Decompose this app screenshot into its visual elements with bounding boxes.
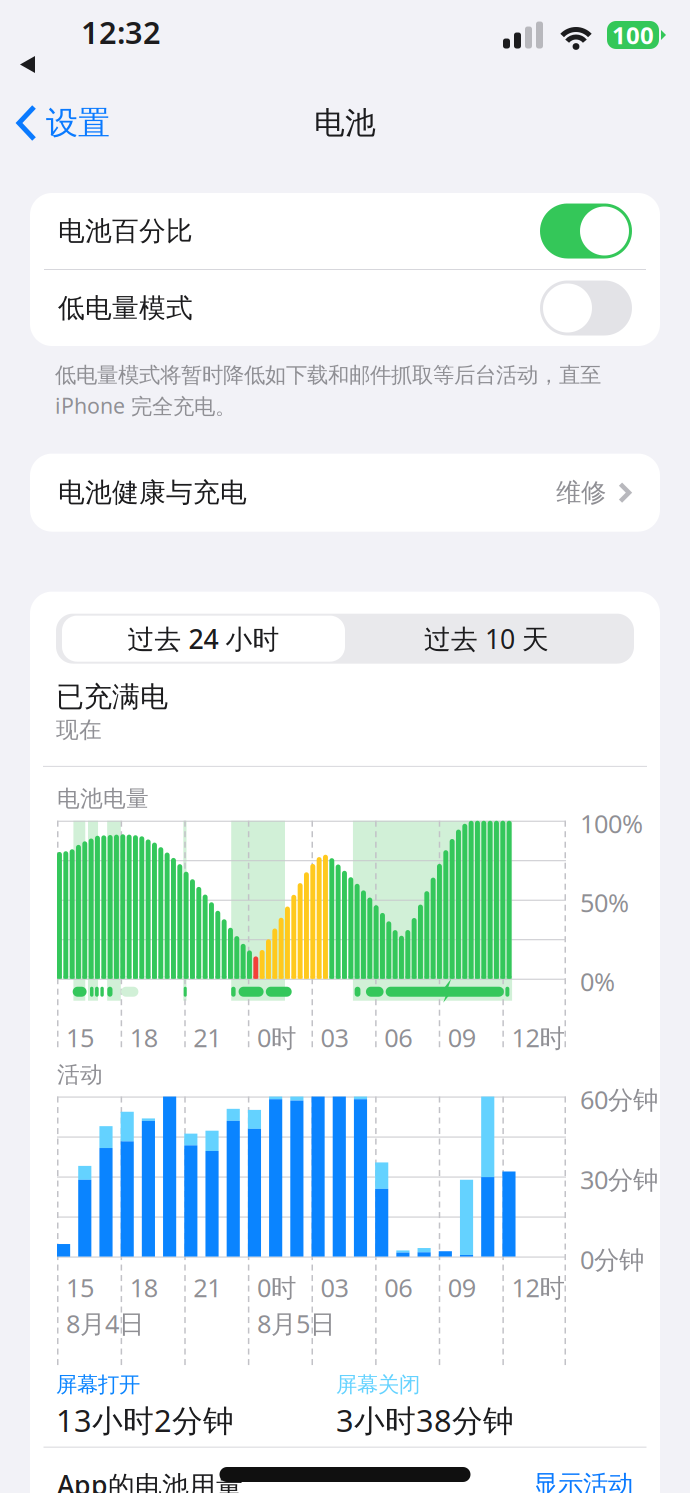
button[interactable]: 电池百分比	[30, 193, 660, 269]
staticText: 100%	[580, 807, 643, 840]
staticText: 8月4日	[66, 1307, 144, 1340]
staticText: 21	[193, 1271, 221, 1304]
staticText: 12:32	[81, 12, 161, 52]
staticText: 21	[193, 1021, 221, 1054]
staticText: 低电量模式	[58, 292, 193, 324]
staticText: 设置	[46, 103, 110, 143]
staticText: 过去 10 天	[424, 621, 549, 656]
staticText: 03	[320, 1021, 348, 1054]
button[interactable]: 低电量模式	[30, 270, 660, 346]
staticText: iPhone 完全充电。	[55, 391, 236, 420]
staticText: 电池	[314, 104, 376, 142]
staticText: 0%	[580, 965, 615, 998]
staticText: 18	[130, 1021, 158, 1054]
staticText: 维修	[556, 477, 606, 508]
button[interactable]: 设置	[0, 93, 120, 153]
staticText: 18	[130, 1271, 158, 1304]
staticText: 低电量模式将暂时降低如下载和邮件抓取等后台活动，直至	[55, 362, 601, 388]
button[interactable]: 电池健康与充电	[30, 454, 660, 532]
staticText: 13小时2分钟	[56, 1400, 234, 1440]
button[interactable]: 过去 10 天	[345, 616, 628, 662]
staticText: 09	[448, 1271, 476, 1304]
staticText: 活动	[57, 1061, 103, 1088]
staticText: 15	[66, 1021, 94, 1054]
staticText: 09	[448, 1021, 476, 1054]
staticText: 现在	[56, 716, 102, 744]
button[interactable]: App的电池用量	[30, 1448, 660, 1493]
staticText: 12时	[511, 1021, 564, 1054]
staticText: 0时	[257, 1271, 296, 1304]
staticText: 0时	[257, 1021, 296, 1054]
staticText: 电池百分比	[58, 215, 193, 247]
staticText: 电池健康与充电	[58, 476, 247, 509]
staticText: 屏幕打开	[56, 1372, 140, 1398]
staticText: 03	[320, 1271, 348, 1304]
staticText: 06	[384, 1021, 412, 1054]
button[interactable]: 过去 24 小时	[62, 616, 345, 662]
staticText: 0分钟	[580, 1243, 644, 1276]
staticText: 电池电量	[57, 785, 149, 813]
staticText: App的电池用量	[57, 1467, 243, 1493]
staticText: 15	[66, 1271, 94, 1304]
staticText: 50%	[580, 886, 629, 919]
staticText: 12时	[511, 1271, 564, 1304]
staticText: 屏幕关闭	[336, 1372, 420, 1398]
staticText: 显示活动	[533, 1469, 633, 1493]
staticText: 100	[612, 19, 654, 51]
staticText: 已充满电	[56, 680, 168, 714]
staticText: 06	[384, 1271, 412, 1304]
staticText: 60分钟	[580, 1083, 658, 1116]
staticText: 8月5日	[257, 1307, 335, 1340]
staticText: 30分钟	[580, 1163, 658, 1196]
staticText: 3小时38分钟	[336, 1400, 514, 1440]
staticText: 过去 24 小时	[127, 621, 279, 656]
